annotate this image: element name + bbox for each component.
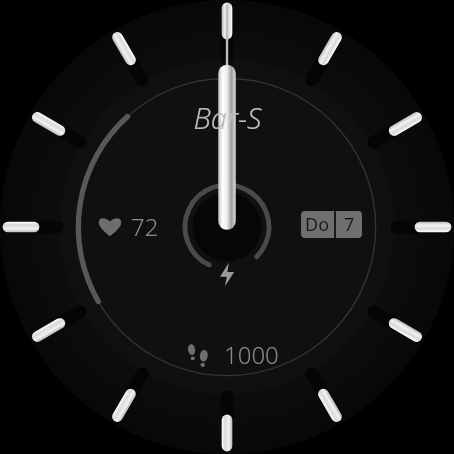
other: Heart rate: [98, 215, 122, 239]
staticText: 72: [131, 210, 159, 243]
button[interactable]: Do: [301, 211, 362, 238]
staticText: 1000: [224, 338, 279, 371]
staticText: Bar-S: [193, 98, 262, 137]
other: Steps: [184, 340, 214, 370]
staticText: Do: [305, 212, 330, 237]
button[interactable]: Heart rate: [94, 204, 163, 249]
staticText: 7: [344, 212, 355, 237]
button[interactable]: Bar-S: [0, 0, 454, 454]
button[interactable]: Steps: [180, 334, 283, 375]
